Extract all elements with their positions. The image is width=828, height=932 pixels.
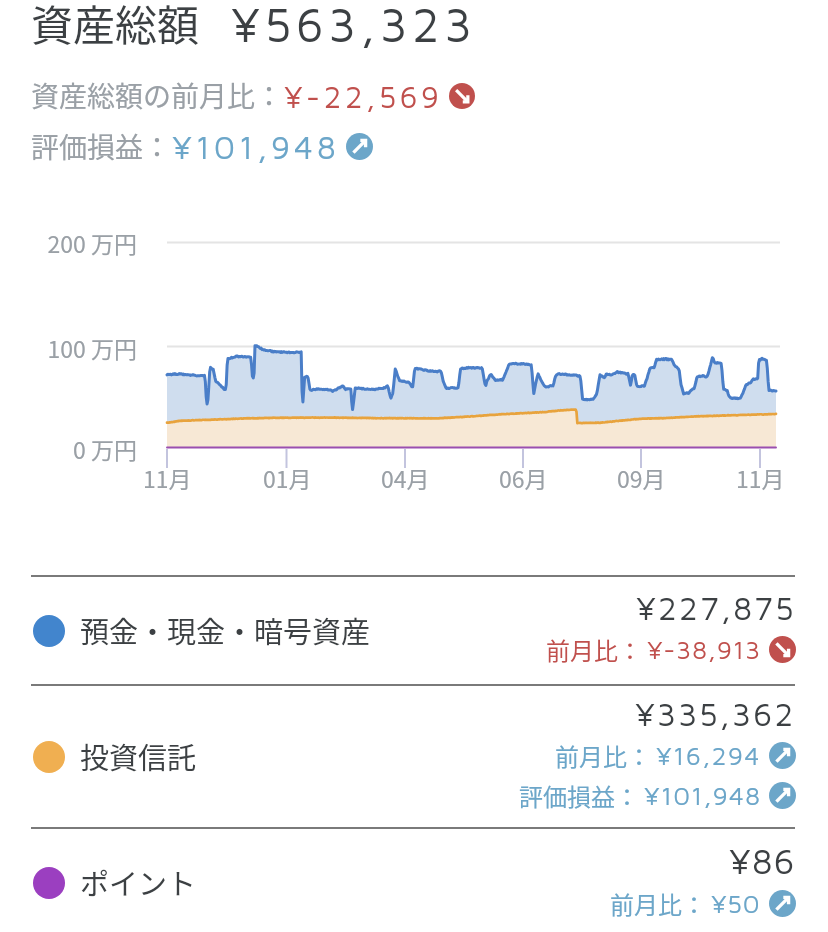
staticText: 前月比： <box>610 886 706 921</box>
other: Increase <box>346 133 373 160</box>
staticText: 11月 <box>736 461 785 494</box>
staticText: ¥-38,913 <box>647 634 761 665</box>
staticText: ポイント <box>80 861 197 903</box>
other: Increase <box>769 782 796 809</box>
staticText: 前月比： <box>555 738 651 773</box>
staticText: 11月 <box>143 461 192 494</box>
staticText: ¥101,948 <box>644 780 761 811</box>
staticText: ¥227,875 <box>636 588 796 627</box>
staticText: ¥-22,569 <box>284 78 443 114</box>
button[interactable]: ポイント <box>0 829 828 932</box>
staticText: 0 万円 <box>0 432 137 465</box>
staticText: 評価損益： <box>31 126 172 167</box>
staticText: ¥101,948 <box>172 127 340 166</box>
staticText: 前月比： <box>546 632 642 667</box>
staticText: 04月 <box>381 461 430 494</box>
staticText: ¥335,362 <box>635 694 796 733</box>
staticText: ¥50 <box>711 888 761 919</box>
staticText: 01月 <box>263 461 312 494</box>
staticText: 資産総額 <box>31 0 200 53</box>
button[interactable]: 評価損益： <box>31 126 373 167</box>
staticText: ¥86 <box>729 839 796 881</box>
staticText: ¥16,294 <box>656 740 761 771</box>
staticText: 200 万円 <box>0 226 137 259</box>
staticText: 預金・現金・暗号資産 <box>80 609 371 651</box>
button[interactable]: 資産総額の前月比： <box>31 75 475 116</box>
other: Decrease <box>449 83 475 109</box>
staticText: ¥563,323 <box>231 0 477 52</box>
staticText: 06月 <box>499 461 548 494</box>
staticText: 100 万円 <box>0 331 137 364</box>
staticText: 09月 <box>617 461 666 494</box>
button[interactable]: 投資信託 <box>0 686 828 827</box>
button[interactable]: 預金・現金・暗号資産 <box>0 577 828 684</box>
button[interactable]: 資産総額 <box>31 0 477 53</box>
other: Increase <box>769 742 796 769</box>
staticText: 投資信託 <box>80 735 197 777</box>
staticText: 資産総額の前月比： <box>31 75 284 116</box>
other: Decrease <box>769 636 796 663</box>
other: Increase <box>769 890 796 917</box>
staticText: 評価損益： <box>519 778 639 813</box>
